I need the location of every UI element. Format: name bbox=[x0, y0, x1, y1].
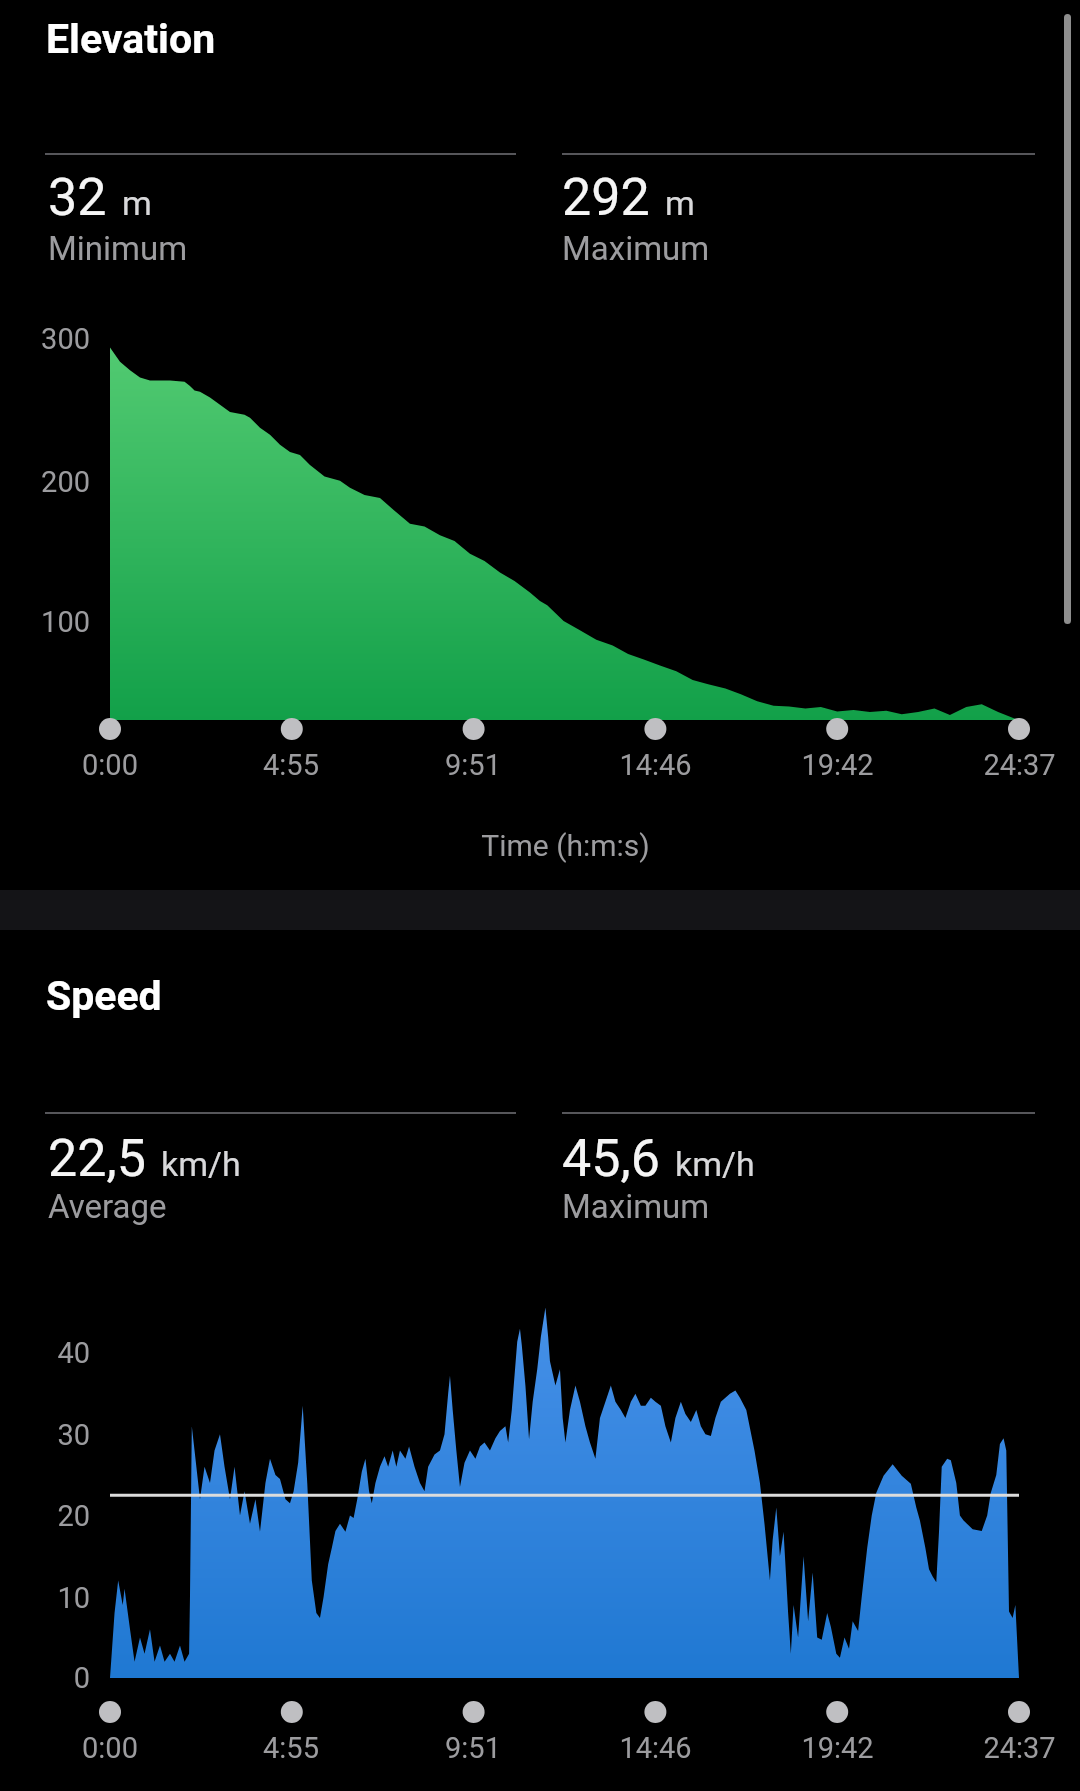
staticText: Maximum bbox=[562, 229, 710, 268]
staticText: 45,6 bbox=[562, 1128, 660, 1189]
staticText: Elevation bbox=[46, 15, 216, 63]
staticText: 0:00 bbox=[82, 1731, 138, 1765]
staticText: 14:46 bbox=[619, 1731, 692, 1765]
staticText: 292 bbox=[562, 167, 650, 228]
staticText: 200 bbox=[41, 465, 90, 499]
staticText: 9:51 bbox=[445, 748, 501, 782]
staticText: Speed bbox=[46, 972, 162, 1020]
staticText: m bbox=[665, 183, 695, 223]
staticText: 4:55 bbox=[263, 1731, 319, 1765]
staticText: 30 bbox=[57, 1418, 90, 1452]
staticText: Average bbox=[48, 1187, 167, 1226]
staticText: 19:42 bbox=[801, 748, 874, 782]
staticText: 100 bbox=[41, 605, 90, 639]
staticText: Maximum bbox=[562, 1187, 710, 1226]
staticText: 300 bbox=[41, 322, 90, 356]
staticText: 32 bbox=[48, 167, 107, 228]
staticText: Minimum bbox=[48, 229, 188, 268]
staticText: km/h bbox=[675, 1144, 755, 1184]
staticText: km/h bbox=[161, 1144, 241, 1184]
staticText: 10 bbox=[57, 1581, 90, 1615]
staticText: 0 bbox=[73, 1661, 90, 1695]
staticText: 4:55 bbox=[263, 748, 319, 782]
staticText: 19:42 bbox=[801, 1731, 874, 1765]
staticText: 24:37 bbox=[983, 748, 1056, 782]
staticText: 24:37 bbox=[983, 1731, 1056, 1765]
staticText: 0:00 bbox=[82, 748, 138, 782]
staticText: 14:46 bbox=[619, 748, 692, 782]
staticText: 22,5 bbox=[48, 1128, 146, 1189]
staticText: m bbox=[122, 183, 152, 223]
staticText: Time (h:m:s) bbox=[481, 828, 650, 863]
staticText: 40 bbox=[57, 1336, 90, 1370]
staticText: 9:51 bbox=[445, 1731, 501, 1765]
staticText: 20 bbox=[57, 1499, 90, 1533]
